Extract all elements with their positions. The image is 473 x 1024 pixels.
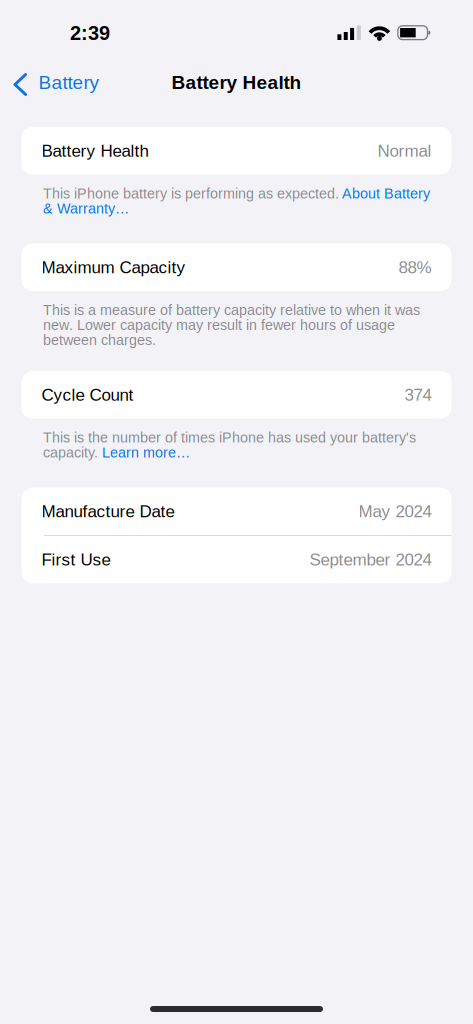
staticText: This is a measure of battery capacity re… <box>43 302 420 348</box>
staticText: 88% <box>398 258 431 277</box>
staticText: September 2024 <box>309 550 431 569</box>
staticText: Normal <box>377 141 431 160</box>
staticText: 374 <box>404 385 431 404</box>
staticText: This is the number of times iPhone has u… <box>43 430 416 461</box>
staticText: Battery Health <box>171 72 301 93</box>
staticText: May 2024 <box>358 502 431 521</box>
staticText: Battery Health <box>41 141 148 160</box>
staticText: Battery <box>38 72 99 93</box>
staticText: Cycle Count <box>41 385 133 404</box>
staticText: 2:39 <box>70 22 110 44</box>
staticText: Maximum Capacity <box>41 258 185 277</box>
staticText: First Use <box>41 550 110 569</box>
button[interactable]: Battery <box>0 62 109 103</box>
staticText: This iPhone battery is performing as exp… <box>43 185 430 216</box>
staticText: Manufacture Date <box>41 502 174 521</box>
button[interactable]: Battery Health <box>21 127 451 174</box>
